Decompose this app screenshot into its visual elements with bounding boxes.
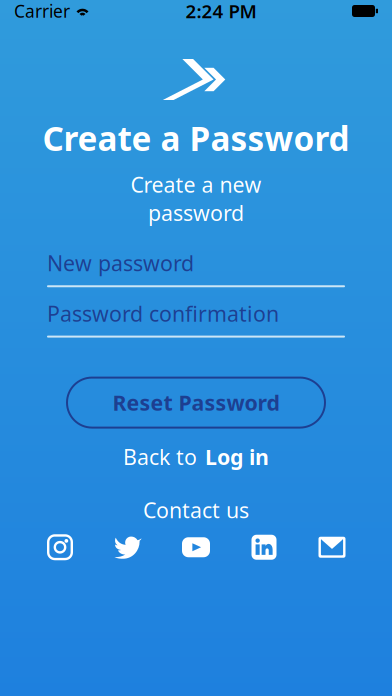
button[interactable]: Reset Password <box>67 378 325 428</box>
staticText: New password <box>47 249 194 277</box>
button[interactable]: Instagram <box>26 532 94 562</box>
staticText: password <box>148 199 244 227</box>
staticText: Contact us <box>143 496 249 524</box>
button[interactable]: LinkedIn <box>230 532 298 562</box>
staticText: Password confirmation <box>47 299 279 328</box>
button[interactable]: Twitter <box>94 532 162 562</box>
button[interactable]: Email <box>298 532 366 562</box>
staticText: Create a new <box>130 170 261 199</box>
staticText: Create a Password <box>42 116 349 160</box>
button[interactable]: Log in <box>205 443 269 471</box>
button[interactable]: YouTube <box>162 532 230 562</box>
staticText: 2:24 PM <box>185 0 256 23</box>
staticText: Reset Password <box>112 388 279 417</box>
staticText: Carrier <box>14 0 70 22</box>
staticText: Back to <box>123 443 197 471</box>
staticText: Log in <box>205 443 269 471</box>
